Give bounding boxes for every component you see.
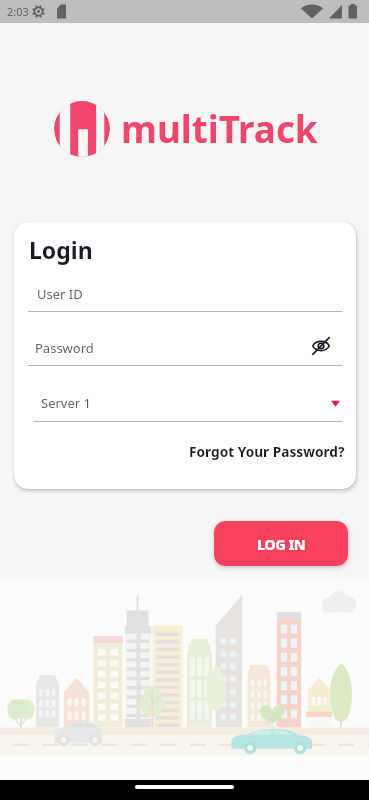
staticText: LOG IN — [257, 534, 306, 554]
button[interactable]: Forgot Your Password? — [189, 442, 345, 461]
button[interactable]: LOG IN — [214, 521, 348, 566]
other: Toggle password visibility — [312, 337, 330, 355]
staticText: User ID — [37, 285, 83, 303]
staticText: Password — [35, 339, 94, 357]
staticText: Server 1 — [41, 394, 91, 412]
button[interactable]: Password — [28, 339, 342, 366]
staticText: Login — [29, 234, 93, 265]
staticText: 2:03 — [7, 4, 29, 19]
button[interactable]: Server 1 — [34, 394, 342, 422]
button[interactable]: Home — [135, 785, 234, 789]
staticText: multiTrack — [121, 104, 318, 154]
staticText: Forgot Your Password? — [189, 442, 345, 461]
button[interactable]: User ID — [28, 285, 342, 312]
